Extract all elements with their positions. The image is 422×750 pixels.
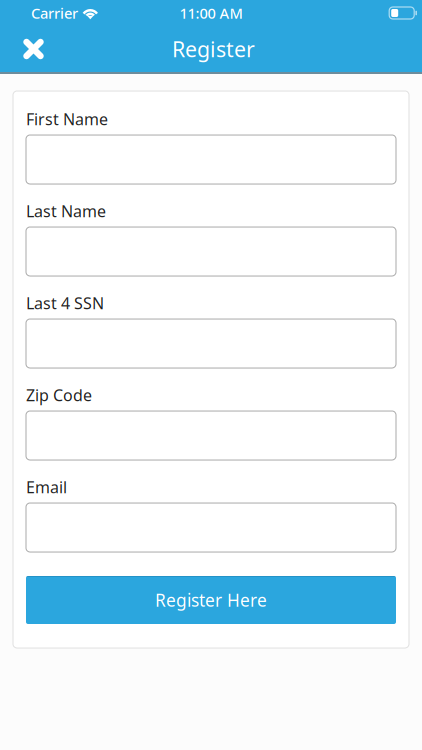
button[interactable]: Register Here (26, 576, 396, 624)
staticText: First Name (26, 108, 108, 130)
button[interactable]: First Name (26, 135, 396, 184)
staticText: Register (172, 35, 255, 63)
staticText: Email (26, 476, 67, 498)
staticText: Zip Code (26, 384, 92, 406)
staticText: Last 4 SSN (26, 292, 104, 314)
button[interactable]: Close (11, 25, 56, 72)
button[interactable]: Last Name (26, 227, 396, 276)
staticText: Register Here (155, 588, 267, 611)
staticText: 11:00 AM (179, 3, 242, 23)
staticText: Carrier (31, 3, 78, 23)
button[interactable]: Last 4 SSN (26, 319, 396, 368)
button[interactable]: Zip Code (26, 411, 396, 460)
button[interactable]: Email (26, 503, 396, 552)
staticText: Last Name (26, 200, 106, 222)
